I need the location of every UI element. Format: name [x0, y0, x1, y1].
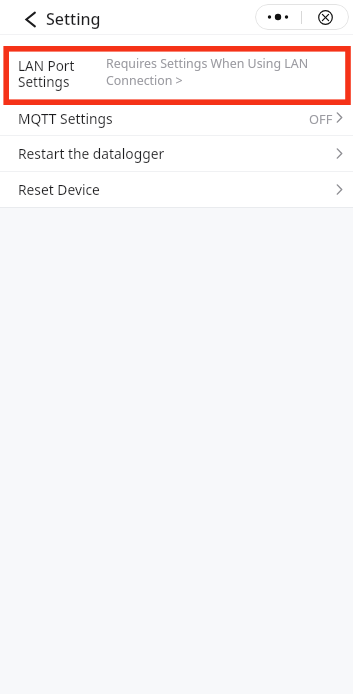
staticText: Requires Settings When Using LAN Connect…	[106, 55, 344, 89]
button[interactable]: Reset Device	[0, 172, 353, 207]
button[interactable]: LAN Port Settings	[0, 35, 353, 99]
staticText: LAN Port Settings	[18, 57, 75, 91]
staticText: Restart the datalogger	[18, 144, 165, 163]
staticText: MQTT Settings	[18, 109, 113, 128]
button[interactable]	[255, 4, 301, 30]
button[interactable]	[302, 4, 349, 30]
button[interactable]: Restart the datalogger	[0, 136, 353, 171]
staticText: Reset Device	[18, 180, 100, 199]
button[interactable]: Setting	[25, 2, 101, 36]
staticText: Setting	[46, 8, 101, 30]
button[interactable]: MQTT Settings	[0, 99, 353, 135]
staticText: OFF	[309, 110, 333, 127]
